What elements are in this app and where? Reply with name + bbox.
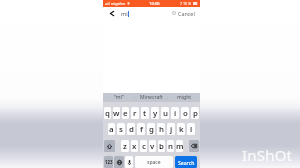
staticText: f: [140, 124, 143, 135]
button[interactable]: j: [167, 123, 175, 135]
button[interactable]: space: [135, 156, 173, 168]
button[interactable]: r: [131, 107, 139, 119]
staticText: migafon: [111, 1, 126, 6]
button[interactable]: Switch keyboard: [114, 156, 124, 168]
staticText: space: [147, 159, 161, 166]
button[interactable]: y: [151, 107, 159, 119]
staticText: h: [159, 124, 164, 135]
button[interactable]: h: [157, 123, 165, 135]
button[interactable]: c: [140, 140, 147, 152]
button[interactable]: a: [108, 123, 115, 135]
button[interactable]: Back: [105, 7, 116, 19]
staticText: 123: [105, 159, 113, 165]
staticText: 10:06: [149, 1, 160, 7]
button[interactable]: d: [127, 123, 135, 135]
staticText: z: [123, 141, 127, 152]
button[interactable]: e: [122, 107, 129, 119]
staticText: n: [168, 141, 173, 152]
staticText: e: [123, 108, 128, 119]
button[interactable]: Dictate: [125, 156, 133, 168]
button[interactable]: Cancel: [177, 7, 196, 19]
staticText: mi: [121, 10, 128, 18]
button[interactable]: Search: [175, 156, 197, 168]
staticText: t: [143, 108, 147, 119]
button[interactable]: w: [113, 107, 120, 119]
button[interactable]: z: [121, 140, 129, 152]
staticText: y: [153, 108, 158, 119]
button[interactable]: g: [147, 123, 155, 135]
staticText: l: [190, 124, 193, 135]
staticText: m: [176, 141, 183, 152]
button[interactable]: f: [137, 123, 145, 135]
staticText: a: [109, 124, 114, 135]
button[interactable]: x: [131, 140, 138, 152]
button[interactable]: Shift: [104, 140, 115, 152]
staticText: v: [150, 141, 155, 152]
button[interactable]: k: [177, 123, 185, 135]
staticText: Search: [178, 159, 195, 166]
staticText: p: [193, 108, 198, 119]
button[interactable]: q: [104, 107, 111, 119]
staticText: i: [174, 108, 177, 119]
staticText: g: [149, 124, 154, 135]
button[interactable]: u: [161, 107, 169, 119]
button[interactable]: s: [117, 123, 125, 135]
staticText: InShOt: [242, 145, 293, 165]
button[interactable]: i: [171, 107, 179, 119]
button[interactable]: p: [191, 107, 199, 119]
button[interactable]: m: [176, 140, 183, 152]
button[interactable]: “mi”: [103, 93, 134, 102]
staticText: d: [129, 124, 134, 135]
staticText: 7 15 %: [180, 1, 192, 6]
staticText: r: [133, 108, 137, 119]
button[interactable]: t: [141, 107, 149, 119]
staticText: b: [159, 141, 164, 152]
staticText: s: [119, 124, 123, 135]
button[interactable]: n: [167, 140, 174, 152]
staticText: “mi”: [114, 94, 124, 101]
button[interactable]: Backspace: [189, 140, 199, 152]
staticText: might: [177, 94, 192, 101]
staticText: x: [132, 141, 137, 152]
button[interactable]: o: [181, 107, 189, 119]
button[interactable]: might: [168, 93, 200, 102]
staticText: q: [105, 108, 110, 119]
button[interactable]: l: [187, 123, 195, 135]
staticText: j: [170, 124, 173, 135]
staticText: c: [142, 141, 146, 152]
staticText: Cancel: [178, 10, 195, 17]
staticText: Minecraft: [140, 94, 163, 101]
button[interactable]: b: [158, 140, 165, 152]
button[interactable]: v: [149, 140, 156, 152]
staticText: u: [163, 108, 168, 119]
staticText: k: [179, 124, 184, 135]
staticText: o: [183, 108, 188, 119]
button[interactable]: Minecraft: [135, 93, 167, 102]
button[interactable]: Clear text: [168, 7, 178, 19]
staticText: w: [113, 108, 120, 119]
button[interactable]: 123: [104, 156, 113, 168]
